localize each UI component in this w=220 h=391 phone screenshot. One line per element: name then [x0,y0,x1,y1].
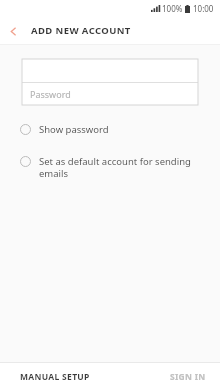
staticText: 100% [162,3,183,14]
button[interactable]: Back [0,18,26,44]
staticText: Set as default account for sending email… [39,155,205,180]
button[interactable]: Email address [22,59,198,82]
button[interactable]: Show password [0,115,220,143]
staticText: Password [30,88,71,100]
staticText: Show password [39,123,109,136]
staticText: SIGN IN [170,371,206,383]
staticText: 10:00 [193,3,214,14]
button[interactable]: MANUAL SETUP [0,363,102,391]
button[interactable]: Set as default account for sending email… [0,147,220,184]
staticText: ADD NEW ACCOUNT [31,24,131,37]
button[interactable]: SIGN IN [158,363,220,391]
staticText: MANUAL SETUP [20,371,90,383]
button[interactable]: Password [22,83,198,105]
